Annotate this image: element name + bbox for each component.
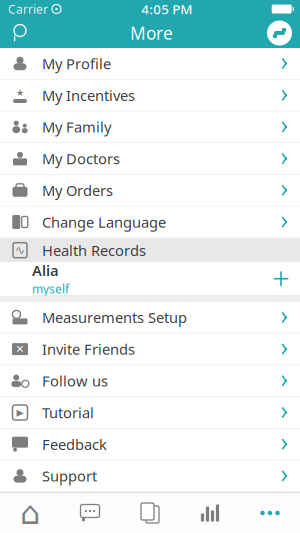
staticText: About	[42, 498, 83, 517]
staticText: Invite Friends	[42, 339, 135, 359]
button[interactable]: My Doctors	[0, 143, 300, 175]
button[interactable]: Search	[2, 18, 36, 48]
staticText: ★	[16, 87, 24, 98]
staticText: Carrier	[8, 1, 48, 17]
staticText: Health Records	[42, 240, 146, 260]
button[interactable]: Measurements Setup	[0, 302, 300, 334]
button[interactable]: My Family	[0, 111, 300, 143]
staticText: ▶	[16, 407, 23, 418]
staticText: My Orders	[42, 181, 113, 200]
staticText: My Profile	[42, 54, 111, 73]
button[interactable]: More	[240, 493, 300, 533]
staticText: Follow us	[42, 371, 108, 391]
staticText: My Incentives	[42, 85, 135, 105]
staticText: Support	[42, 466, 97, 486]
button[interactable]: About	[0, 492, 300, 524]
staticText: Measurements Setup	[42, 308, 187, 327]
button[interactable]: Support	[0, 460, 300, 492]
button[interactable]: Documents	[120, 493, 180, 533]
button[interactable]: Home	[0, 493, 60, 533]
staticText: myself	[32, 281, 69, 297]
button[interactable]: Reports	[180, 493, 240, 533]
staticText: Alia	[32, 260, 59, 280]
button[interactable]: ✕	[0, 334, 300, 365]
staticText: My Family	[42, 117, 111, 137]
button[interactable]: Feedback	[0, 429, 300, 460]
button[interactable]: My Profile	[0, 48, 300, 80]
button[interactable]: Alia	[0, 262, 300, 296]
button[interactable]: ▶	[0, 397, 300, 429]
button[interactable]: Messages	[60, 493, 120, 533]
staticText: ✕	[15, 343, 24, 355]
button[interactable]: ★	[0, 80, 300, 111]
staticText: 4:05 PM	[141, 0, 192, 18]
button[interactable]: Follow us	[0, 365, 300, 397]
staticText: More	[130, 21, 173, 44]
button[interactable]: Change Language	[0, 206, 300, 238]
button[interactable]: Call	[267, 20, 300, 45]
staticText: Feedback	[42, 434, 107, 454]
staticText: Tutorial	[42, 403, 94, 422]
button[interactable]: My Orders	[0, 175, 300, 206]
staticText: ⌂	[20, 495, 40, 531]
staticText: ∿	[15, 243, 25, 257]
staticText: My Doctors	[42, 149, 120, 168]
staticText: Change Language	[42, 212, 166, 232]
